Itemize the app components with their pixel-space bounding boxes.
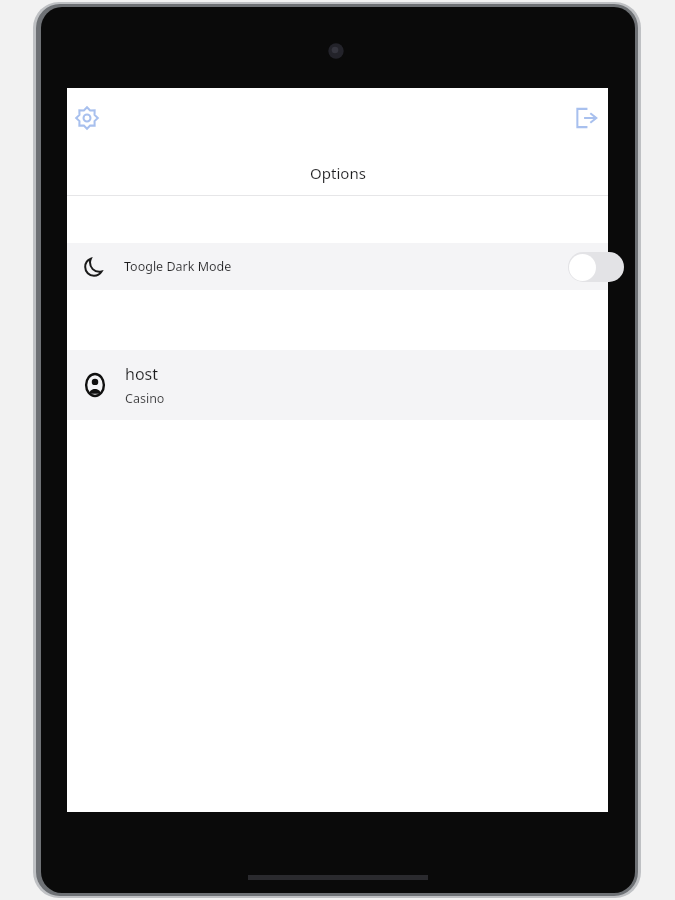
staticText: Toogle Dark Mode xyxy=(124,258,232,275)
button[interactable]: host xyxy=(67,350,608,420)
button[interactable]: Log out xyxy=(567,99,605,137)
button[interactable]: Toggle Dark Mode xyxy=(568,252,624,282)
button[interactable]: Settings xyxy=(68,99,106,137)
staticText: host xyxy=(125,363,159,385)
button[interactable]: Toogle Dark Mode xyxy=(67,243,608,290)
staticText: Options xyxy=(310,163,366,183)
staticText: Casino xyxy=(125,390,165,407)
